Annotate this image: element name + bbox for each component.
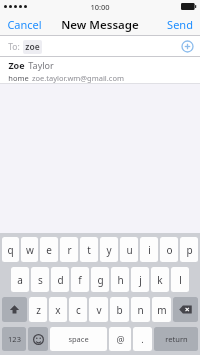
button[interactable]: 123 [2, 327, 26, 351]
button[interactable]: d [51, 267, 69, 292]
button[interactable]: o [160, 237, 178, 262]
staticText: b [116, 303, 123, 317]
staticText: d [57, 273, 64, 287]
button[interactable]: To: [0, 36, 200, 57]
staticText: a [17, 273, 23, 287]
button[interactable]: return [154, 327, 198, 351]
staticText: v [96, 303, 102, 317]
button[interactable]: e [40, 237, 58, 262]
button[interactable]: Zoe [0, 57, 200, 84]
button[interactable]: . [133, 327, 152, 351]
staticText: 10:00 [90, 2, 110, 12]
button[interactable]: a [11, 267, 29, 292]
staticText: e [46, 243, 52, 257]
button[interactable]: g [91, 267, 109, 292]
staticText: h [117, 273, 124, 287]
button[interactable]: h [111, 267, 129, 292]
button[interactable]: Cancel [0, 13, 49, 36]
button[interactable]: u [120, 237, 138, 262]
staticText: i [148, 243, 151, 257]
staticText: New Message [61, 17, 139, 33]
staticText: l [179, 273, 182, 287]
staticText: 123 [8, 334, 21, 344]
staticText: p [186, 243, 193, 257]
staticText: q [7, 243, 14, 257]
staticText: j [139, 273, 142, 287]
staticText: k [157, 273, 163, 287]
button[interactable]: Add contact [181, 40, 194, 53]
button[interactable]: s [31, 267, 49, 292]
button[interactable]: m [152, 297, 171, 322]
button[interactable]: q [2, 237, 19, 262]
staticText: g [97, 273, 104, 287]
button[interactable]: i [140, 237, 158, 262]
staticText: zoe.taylor.wm@gmail.com [32, 73, 124, 83]
staticText: zoe [25, 41, 40, 53]
button[interactable]: r [60, 237, 78, 262]
staticText: To: [8, 41, 20, 53]
staticText: o [166, 243, 173, 257]
button[interactable]: Send [160, 13, 200, 36]
button[interactable]: @ [109, 327, 131, 351]
button[interactable]: z [29, 297, 47, 322]
staticText: Send [167, 17, 193, 32]
button[interactable]: f [71, 267, 89, 292]
staticText: space [68, 334, 89, 344]
button[interactable]: x [49, 297, 67, 322]
staticText: s [38, 273, 43, 287]
button[interactable]: Backspace [173, 297, 198, 322]
button[interactable]: l [171, 267, 189, 292]
staticText: @ [116, 333, 125, 345]
staticText: home [8, 73, 29, 83]
staticText: u [126, 243, 133, 257]
button[interactable]: p [180, 237, 198, 262]
button[interactable]: Emoji keyboard [28, 327, 48, 351]
staticText: w [26, 243, 34, 257]
staticText: r [67, 243, 72, 257]
button[interactable]: Shift [2, 297, 27, 322]
staticText: c [76, 303, 81, 317]
button[interactable]: k [151, 267, 169, 292]
button[interactable]: j [131, 267, 149, 292]
button[interactable]: t [80, 237, 98, 262]
staticText: n [137, 303, 144, 317]
button[interactable]: b [110, 297, 129, 322]
staticText: m [157, 303, 167, 317]
staticText: . [141, 333, 144, 345]
button[interactable]: c [69, 297, 87, 322]
button[interactable]: v [89, 297, 108, 322]
staticText: Zoe [8, 59, 25, 71]
staticText: Taylor [28, 59, 54, 71]
staticText: f [78, 273, 82, 287]
button[interactable]: y [100, 237, 118, 262]
staticText: x [55, 303, 61, 317]
staticText: t [87, 243, 91, 257]
button[interactable]: w [21, 237, 38, 262]
staticText: return [165, 334, 188, 344]
staticText: y [106, 243, 112, 257]
staticText: Cancel [7, 17, 42, 32]
staticText: z [36, 303, 41, 317]
button[interactable]: space [50, 327, 107, 351]
button[interactable]: n [131, 297, 150, 322]
